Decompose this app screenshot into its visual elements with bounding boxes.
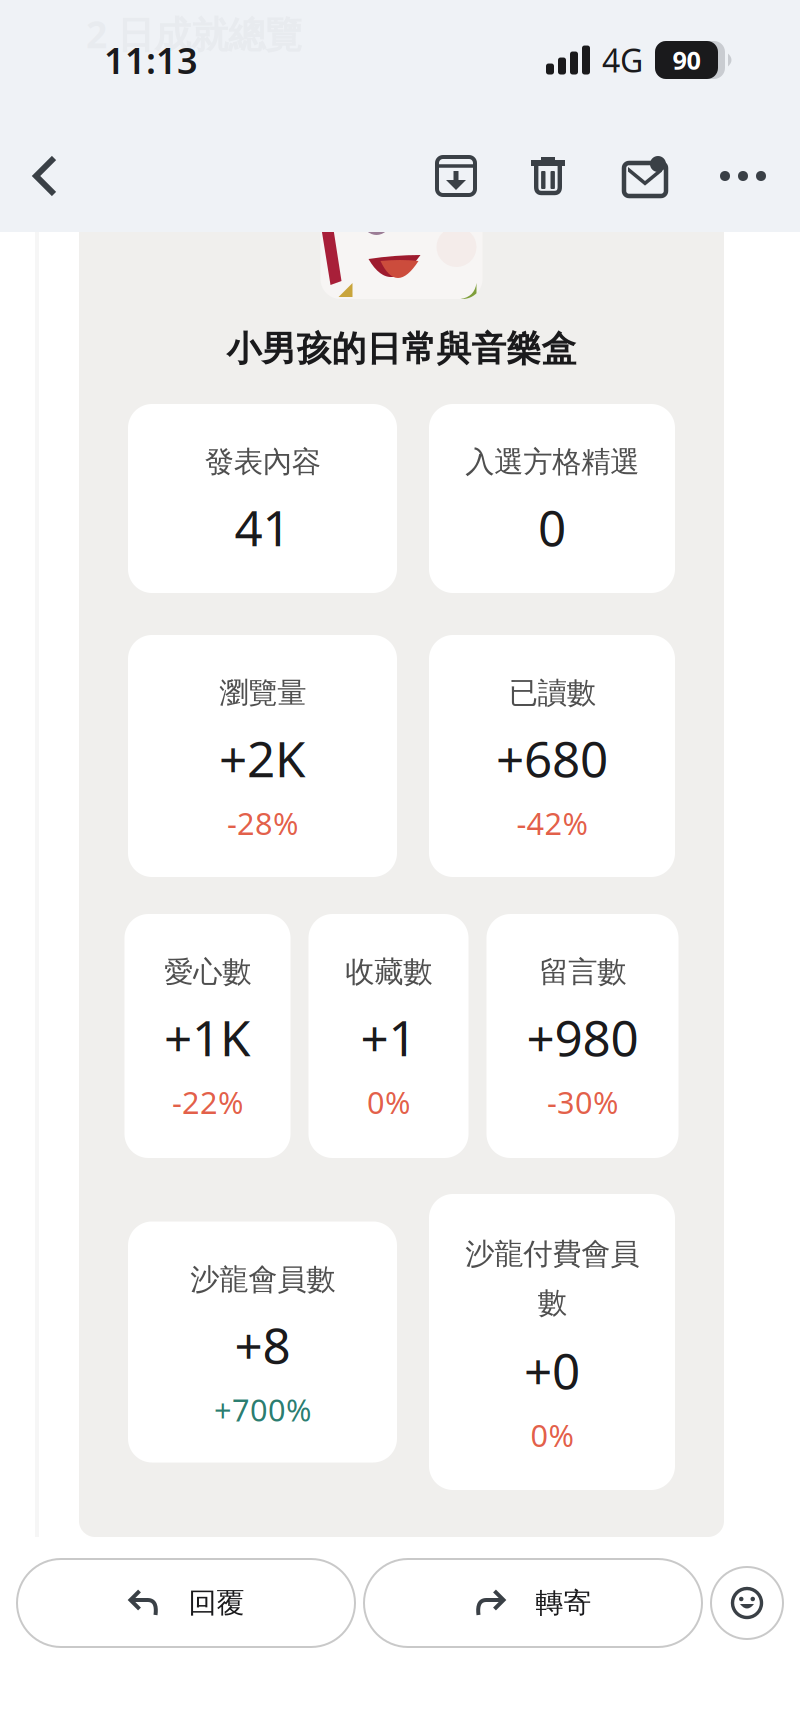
staticText: 回覆	[188, 1586, 244, 1620]
staticText: -22%	[172, 1082, 243, 1122]
staticText: 4G	[602, 39, 643, 81]
staticText: 90	[672, 43, 700, 77]
staticText: 41	[234, 494, 290, 560]
staticText: 瀏覽量	[219, 675, 306, 711]
staticText: +0	[524, 1337, 580, 1403]
staticText: 已讀數	[508, 675, 595, 711]
button[interactable]: 轉寄	[364, 1559, 702, 1647]
button[interactable]: Mark unread	[596, 120, 694, 232]
staticText: -42%	[516, 803, 587, 843]
staticText: 沙龍付費會員數	[465, 1236, 639, 1321]
staticText: +680	[496, 725, 608, 791]
staticText: 收藏數	[345, 954, 432, 990]
staticText: 2 日成就總覽	[86, 9, 302, 59]
button[interactable]: Add reaction	[711, 1567, 783, 1639]
staticText: +8	[234, 1312, 290, 1377]
staticText: 留言數	[539, 954, 626, 990]
staticText: +2K	[219, 725, 306, 791]
staticText: 愛心數	[164, 954, 251, 990]
staticText: 11:13	[104, 36, 198, 84]
staticText: +980	[526, 1004, 638, 1070]
button[interactable]: More	[694, 120, 792, 232]
button[interactable]: 回覆	[17, 1559, 355, 1647]
button[interactable]: Delete	[500, 120, 596, 232]
staticText: 0%	[530, 1415, 573, 1455]
staticText: +1	[360, 1004, 416, 1070]
staticText: +700%	[214, 1389, 311, 1430]
staticText: 小男孩的日常與音樂盒	[226, 328, 576, 370]
staticText: 0%	[367, 1082, 410, 1122]
button[interactable]: Archive	[412, 120, 500, 232]
staticText: 0	[538, 494, 566, 560]
staticText: 沙龍會員數	[190, 1261, 335, 1297]
staticText: 入選方格精選	[465, 444, 639, 480]
staticText: +1K	[164, 1004, 251, 1070]
staticText: 轉寄	[535, 1586, 591, 1620]
button[interactable]: Back	[0, 120, 90, 232]
staticText: 發表內容	[204, 444, 320, 480]
staticText: -28%	[227, 803, 298, 843]
staticText: -30%	[547, 1082, 618, 1122]
